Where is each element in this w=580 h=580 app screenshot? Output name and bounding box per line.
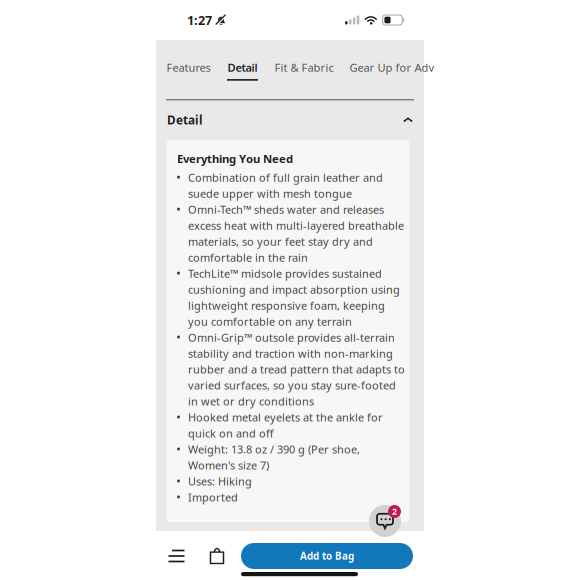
staticText: Weight: 13.8 oz / 390 g (Per shoe, Women…	[188, 442, 360, 473]
button[interactable]: Chat, 2 unread messages	[366, 502, 401, 537]
staticText: Omni-Grip™ outsole provides all-terrain …	[188, 330, 405, 409]
staticText: Omni-Tech™ sheds water and releases exce…	[188, 202, 404, 265]
staticText: Hooked metal eyelets at the ankle for qu…	[188, 410, 383, 441]
button[interactable]: Detail	[227, 54, 258, 87]
staticText: Uses: Hiking	[188, 474, 252, 489]
staticText: Fit & Fabric	[274, 60, 333, 75]
staticText: Detail	[167, 112, 202, 128]
staticText: Add to Bag	[300, 549, 354, 563]
staticText: Gear Up for Adv	[349, 60, 434, 75]
staticText: Everything You Need	[177, 151, 293, 166]
button[interactable]: Fit & Fabric	[275, 54, 333, 87]
staticText: Combination of full grain leather and su…	[188, 170, 383, 201]
button[interactable]: Add to Bag	[241, 543, 413, 569]
button[interactable]: Menu	[160, 543, 193, 569]
staticText: Imported	[188, 490, 238, 505]
button[interactable]: Features	[167, 54, 210, 87]
button[interactable]: Shopping bag	[193, 543, 241, 569]
staticText: Detail	[227, 60, 257, 75]
staticText: TechLite™ midsole provides sustained cus…	[188, 266, 400, 329]
button[interactable]: Detail	[156, 100, 424, 140]
staticText: Features	[166, 60, 210, 75]
staticText: 2	[392, 506, 397, 517]
button[interactable]: Gear Up for Adv	[350, 54, 434, 87]
staticText: 1:27	[187, 11, 212, 29]
